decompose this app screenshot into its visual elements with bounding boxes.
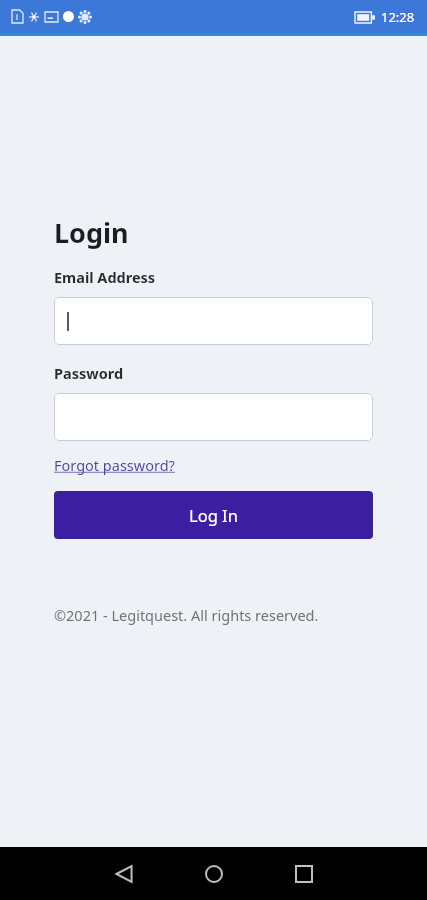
- button[interactable]: Email Address input: [54, 297, 373, 345]
- button[interactable]: Recent apps: [276, 847, 332, 900]
- button[interactable]: Password input: [54, 393, 373, 441]
- staticText: Forgot password?: [54, 455, 175, 475]
- staticText: Login: [54, 214, 129, 251]
- button[interactable]: Log In: [54, 491, 373, 539]
- button[interactable]: Home: [186, 847, 242, 900]
- staticText: Log In: [189, 504, 238, 526]
- staticText: Password: [54, 363, 124, 383]
- button[interactable]: Back: [96, 847, 152, 900]
- staticText: ©2021 - Legitquest. All rights reserved.: [54, 605, 319, 625]
- button[interactable]: Forgot password?: [54, 455, 175, 475]
- staticText: 12:28: [381, 8, 415, 26]
- staticText: Email Address: [54, 267, 156, 287]
